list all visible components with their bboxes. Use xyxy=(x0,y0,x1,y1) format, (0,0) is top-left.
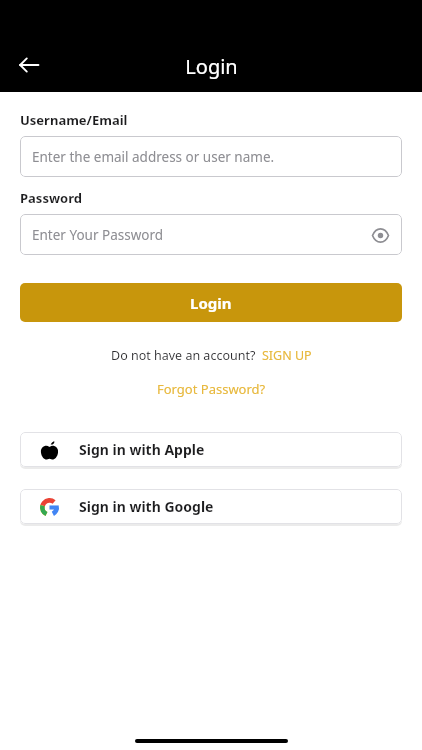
staticText: Login xyxy=(190,293,232,313)
button[interactable]: Back xyxy=(10,46,48,84)
staticText: Forgot Password? xyxy=(157,380,266,398)
button[interactable]: Show password xyxy=(367,222,393,248)
staticText: Username/Email xyxy=(20,111,128,129)
staticText: Sign in with Apple xyxy=(79,440,205,459)
staticText: Login xyxy=(185,53,238,80)
button[interactable]: Enter the email address or user name. xyxy=(20,136,402,177)
button[interactable]: Login xyxy=(20,283,402,322)
button[interactable]: Enter Your Password xyxy=(20,214,402,255)
button[interactable]: Sign in with Google xyxy=(20,489,402,524)
button[interactable]: SIGN UP xyxy=(262,347,312,364)
button[interactable]: Sign in with Apple xyxy=(20,432,402,467)
staticText: Password xyxy=(20,189,82,207)
staticText: Enter Your Password xyxy=(32,226,164,244)
button[interactable]: Forgot Password? xyxy=(157,380,266,398)
staticText: Enter the email address or user name. xyxy=(32,148,275,166)
staticText: Do not have an account? xyxy=(111,347,256,364)
staticText: Sign in with Google xyxy=(79,497,214,516)
staticText: SIGN UP xyxy=(262,347,312,364)
